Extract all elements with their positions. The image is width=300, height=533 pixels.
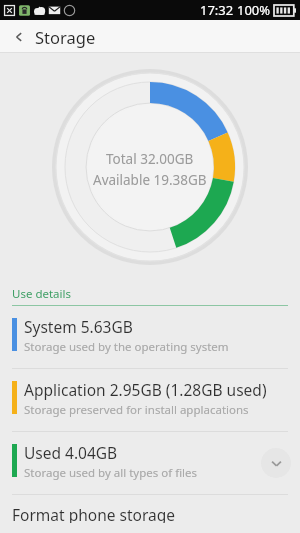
staticText: Storage <box>35 26 96 48</box>
staticText: Storage used by the operating system <box>24 339 229 355</box>
button[interactable]: Format phone storage <box>0 495 300 533</box>
staticText: Total 32.00GB <box>106 150 194 168</box>
button[interactable]: Expand <box>261 448 291 478</box>
staticText: Use details <box>12 286 71 302</box>
button[interactable]: Back <box>0 20 300 53</box>
staticText: Format phone storage <box>12 504 175 523</box>
staticText: Application 2.95GB (1.28GB used) <box>24 379 267 400</box>
staticText: System 5.63GB <box>24 316 133 337</box>
staticText: Storage preserved for install applacatio… <box>24 402 249 418</box>
staticText: Available 19.38GB <box>93 171 207 189</box>
staticText: Used 4.04GB <box>24 442 118 463</box>
other: Back <box>10 28 28 46</box>
staticText: 17:32 <box>200 1 234 19</box>
staticText: Storage used by all types of files <box>24 465 198 481</box>
staticText: 100% <box>237 1 271 19</box>
button[interactable]: Used 4.04GB <box>0 432 300 494</box>
button[interactable]: Application 2.95GB (1.28GB used) <box>0 369 300 431</box>
button[interactable]: System 5.63GB <box>0 306 300 368</box>
